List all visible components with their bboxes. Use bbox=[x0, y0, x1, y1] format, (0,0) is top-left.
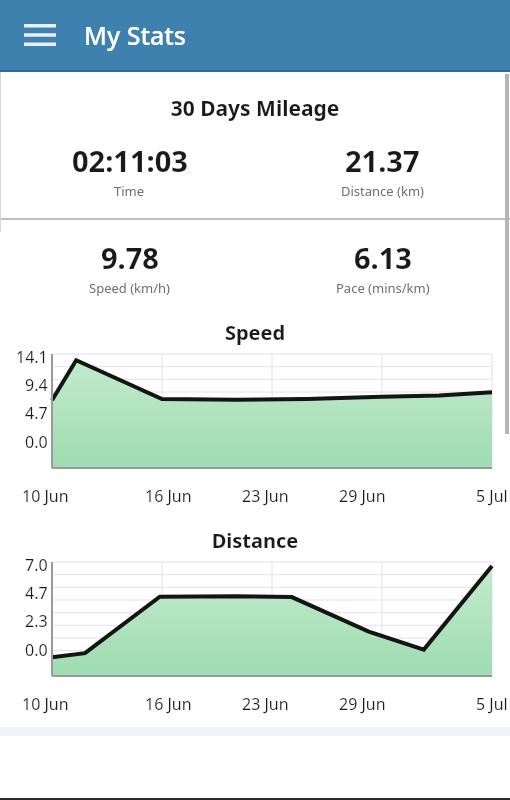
staticText: 9.4 bbox=[25, 374, 48, 396]
staticText: 0.0 bbox=[25, 431, 48, 453]
staticText: 14.1 bbox=[16, 346, 48, 368]
staticText: 9.78 bbox=[101, 238, 159, 277]
staticText: 5 Jul bbox=[476, 693, 508, 715]
staticText: Distance bbox=[0, 527, 510, 554]
staticText: 29 Jun bbox=[339, 693, 386, 715]
staticText: 16 Jun bbox=[145, 693, 192, 715]
staticText: Speed (km/h) bbox=[89, 279, 170, 297]
staticText: 10 Jun bbox=[22, 485, 69, 507]
button[interactable]: Distance bbox=[0, 527, 510, 715]
staticText: 10 Jun bbox=[22, 693, 69, 715]
staticText: Distance (km) bbox=[341, 182, 424, 200]
button[interactable]: 9.78 bbox=[4, 238, 255, 297]
staticText: 29 Jun bbox=[339, 485, 386, 507]
staticText: 23 Jun bbox=[242, 485, 289, 507]
staticText: 4.7 bbox=[25, 402, 48, 424]
button[interactable]: 02:11:03 bbox=[4, 141, 255, 200]
button[interactable]: 6.13 bbox=[255, 238, 510, 297]
staticText: 30 Days Mileage bbox=[0, 94, 510, 123]
staticText: 21.37 bbox=[345, 141, 420, 180]
button[interactable]: Speed bbox=[0, 319, 510, 507]
staticText: Pace (mins/km) bbox=[336, 279, 430, 297]
staticText: 4.7 bbox=[25, 582, 48, 604]
staticText: Speed bbox=[0, 319, 510, 346]
button[interactable]: Open navigation menu bbox=[12, 7, 68, 63]
staticText: My Stats bbox=[84, 18, 187, 52]
button[interactable]: 21.37 bbox=[255, 141, 510, 200]
staticText: 23 Jun bbox=[242, 693, 289, 715]
staticText: 0.0 bbox=[25, 639, 48, 661]
staticText: 5 Jul bbox=[476, 485, 508, 507]
staticText: 16 Jun bbox=[145, 485, 192, 507]
staticText: 6.13 bbox=[354, 238, 412, 277]
staticText: Time bbox=[114, 182, 145, 200]
staticText: 7.0 bbox=[25, 554, 48, 576]
staticText: 2.3 bbox=[25, 610, 48, 632]
staticText: 02:11:03 bbox=[72, 141, 188, 180]
